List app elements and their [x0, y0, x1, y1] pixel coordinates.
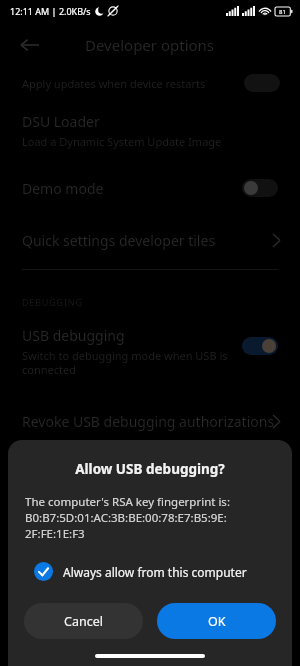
- staticText: Developer options: [85, 35, 215, 55]
- staticText: Revoke USB debugging authorizations: [22, 412, 275, 431]
- staticText: Load a Dynamic System Update Image: [22, 134, 222, 149]
- button[interactable]: Always allow from this computer: [8, 558, 292, 585]
- button[interactable]: Revoke USB debugging authorizations: [0, 407, 300, 435]
- button[interactable]: Cancel: [24, 603, 143, 639]
- staticText: Quick settings developer tiles: [22, 231, 216, 250]
- staticText: 81: [279, 8, 286, 16]
- staticText: 2F:FE:1E:F3: [25, 526, 85, 542]
- staticText: Demo mode: [22, 179, 104, 198]
- button[interactable]: OK: [157, 603, 276, 639]
- staticText: The computer's RSA key fingerprint is:: [25, 494, 230, 510]
- staticText: DSU Loader: [22, 112, 100, 131]
- button[interactable]: Back: [16, 31, 44, 59]
- staticText: DEBUGGING: [22, 296, 83, 308]
- staticText: Switch to debugging mode when USB is con…: [22, 348, 230, 377]
- staticText: Cancel: [64, 613, 103, 630]
- staticText: 12:11 AM | 2.0KB/s: [10, 5, 91, 17]
- staticText: OK: [208, 613, 226, 630]
- staticText: Apply updates when device restarts: [22, 76, 206, 91]
- staticText: Always allow from this computer: [63, 564, 247, 580]
- button[interactable]: Demo mode: [0, 171, 300, 205]
- button[interactable]: DSU Loader: [0, 112, 300, 149]
- staticText: B0:B7:5D:01:AC:3B:BE:00:78:E7:B5:9E:: [25, 510, 227, 526]
- staticText: Allow USB debugging?: [8, 460, 292, 478]
- button[interactable]: USB debugging: [0, 326, 300, 377]
- staticText: USB debugging: [22, 326, 125, 345]
- button[interactable]: Quick settings developer tiles: [0, 225, 300, 255]
